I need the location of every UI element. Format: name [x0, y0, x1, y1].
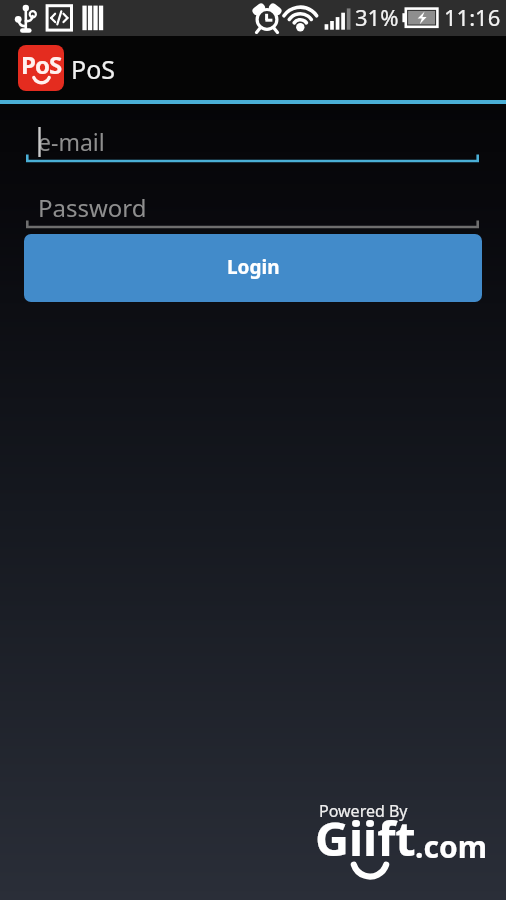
button[interactable]: PoS logo — [18, 45, 64, 91]
staticText: Password — [38, 191, 147, 224]
button[interactable]: e-mail — [26, 117, 479, 164]
staticText: Login — [227, 254, 280, 280]
button[interactable]: Login — [24, 234, 482, 302]
staticText: Powered By — [319, 800, 408, 822]
staticText: 31% — [355, 2, 399, 32]
button[interactable]: Password — [26, 183, 479, 230]
staticText: PoS — [21, 48, 62, 81]
staticText: 11:16 — [444, 2, 501, 32]
staticText: PoS — [71, 52, 115, 86]
staticText: e-mail — [38, 126, 105, 157]
staticText: .com — [415, 826, 487, 867]
staticText: Giift — [315, 806, 416, 870]
